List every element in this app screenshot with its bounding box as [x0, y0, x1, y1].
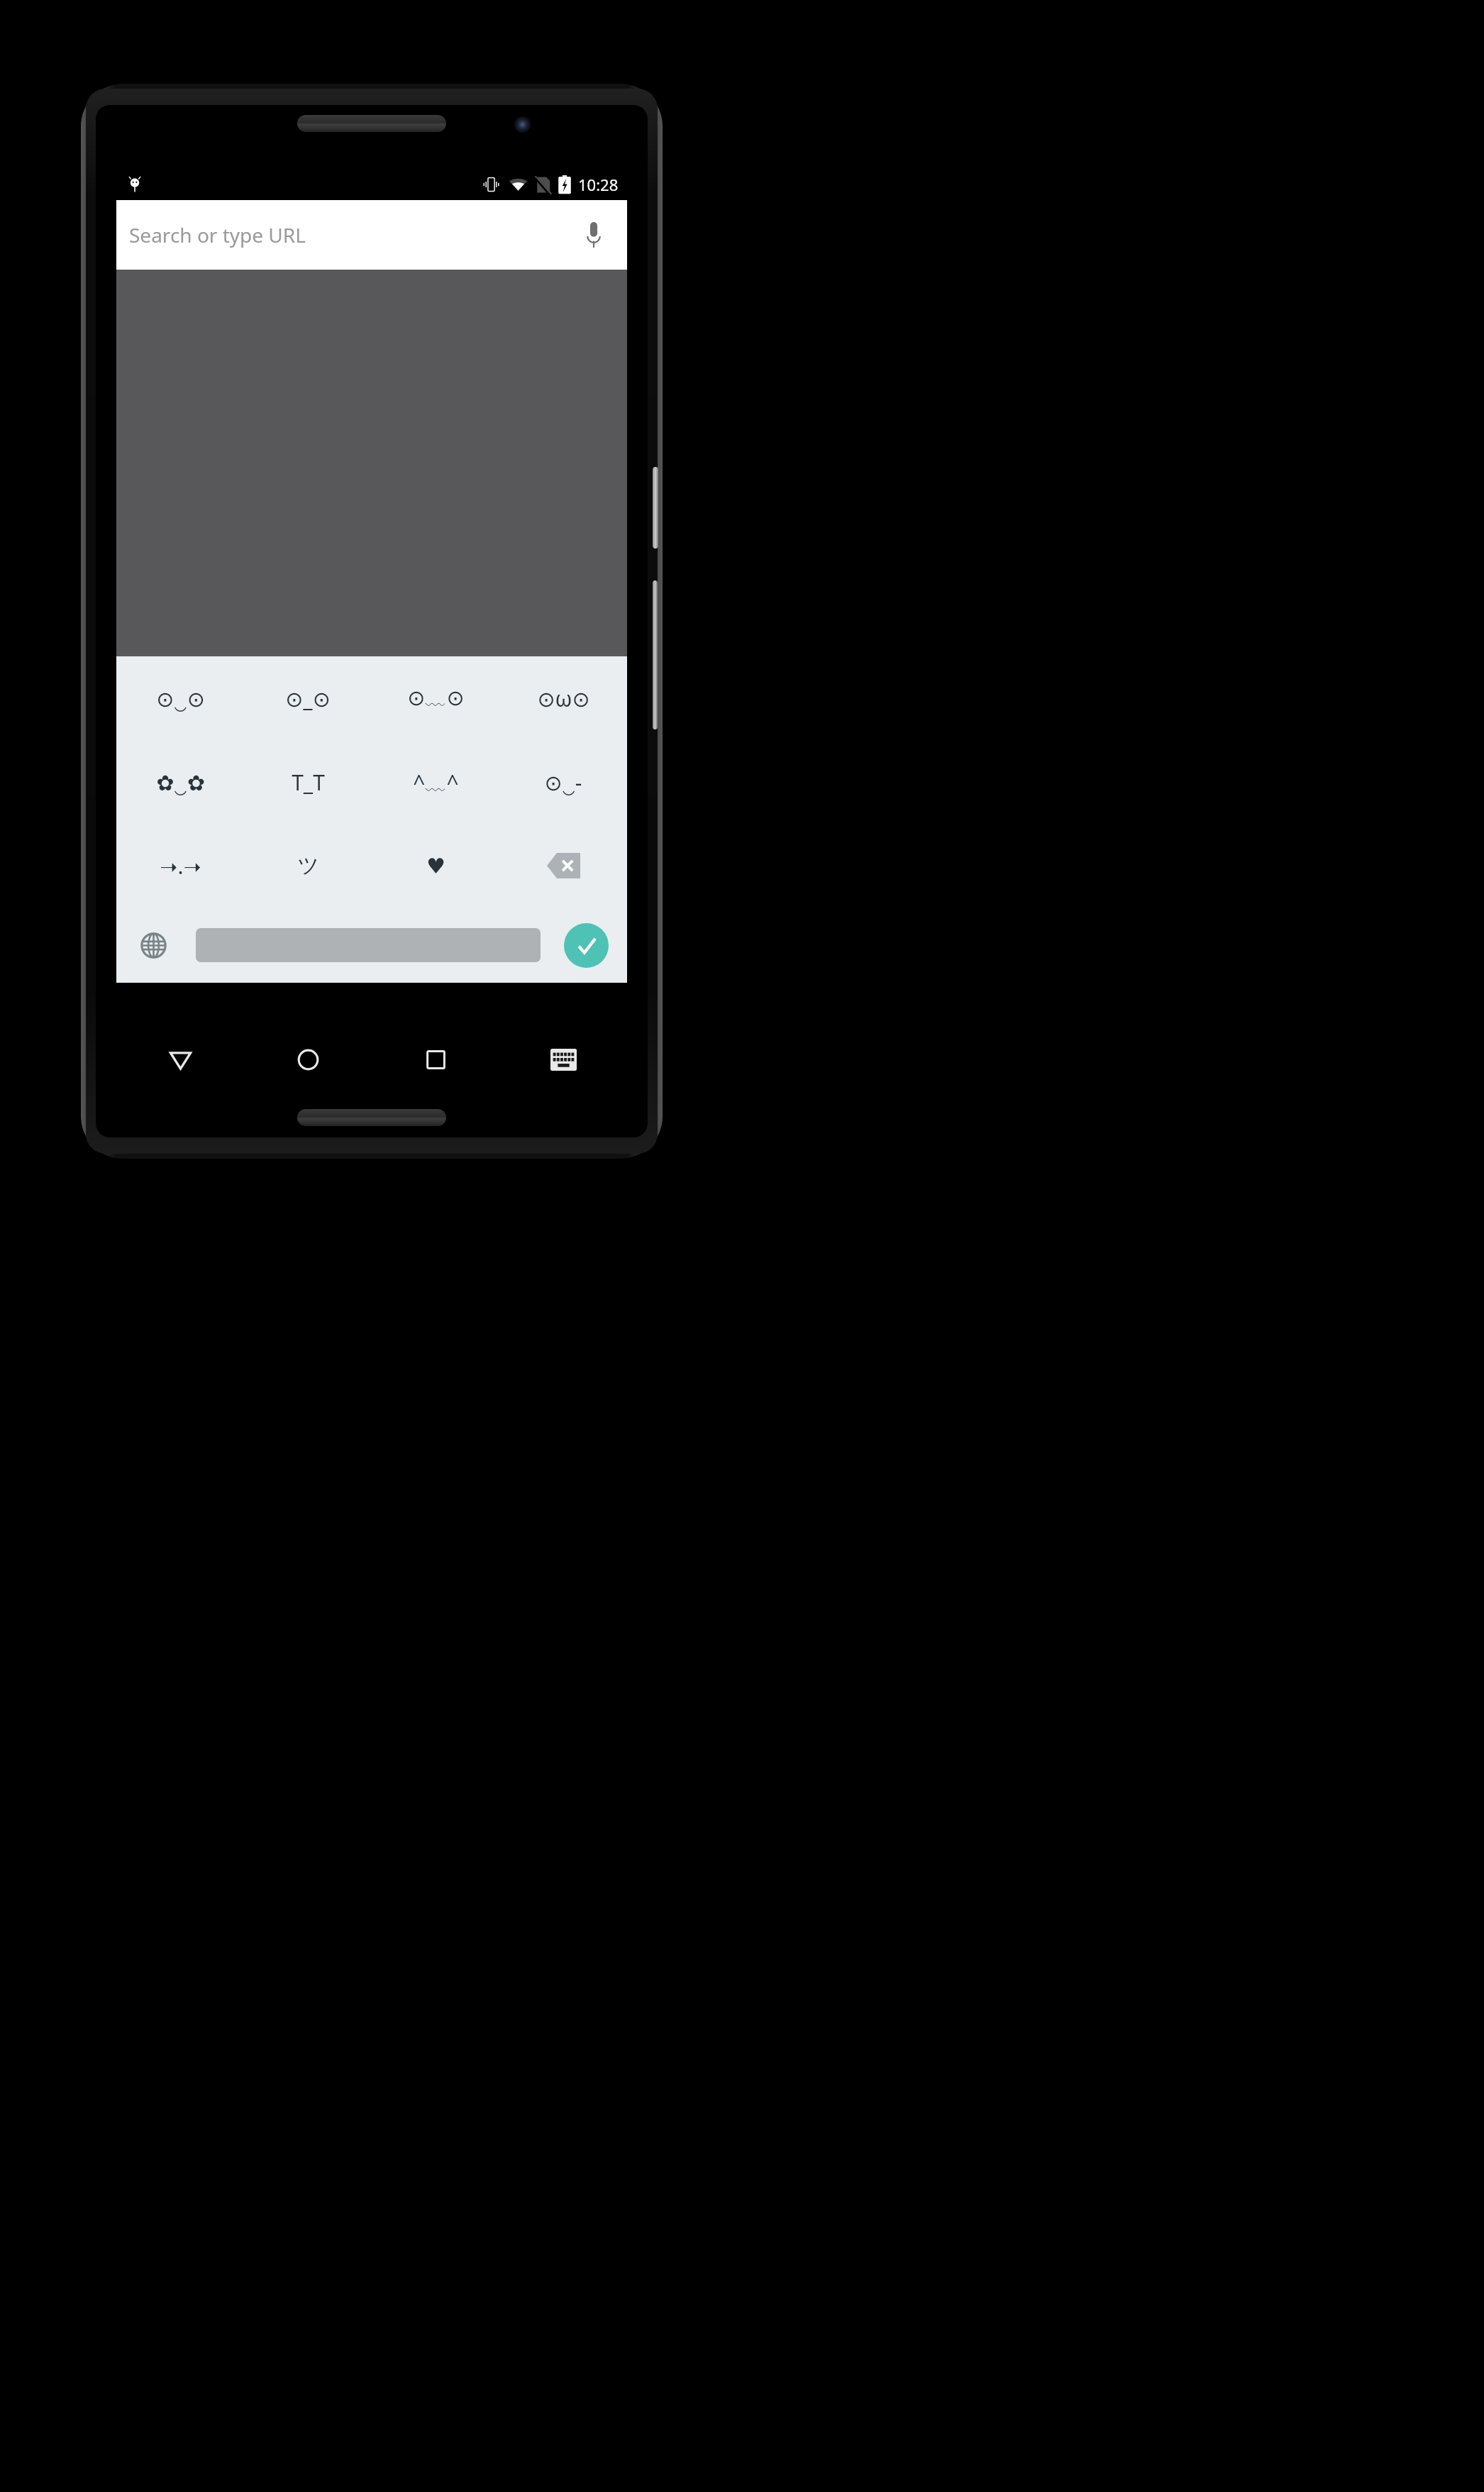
button[interactable]: Done	[564, 923, 609, 968]
button[interactable]: Choose input method	[499, 1020, 627, 1098]
button[interactable]: ⊙_⊙	[244, 656, 372, 740]
button[interactable]: Switch input language	[116, 908, 191, 983]
staticText: ⊙﹏⊙	[407, 685, 465, 712]
button[interactable]: ^﹏^	[372, 740, 499, 824]
staticText: ⊙ω⊙	[537, 684, 590, 713]
button[interactable]: ✿‿✿	[116, 740, 244, 824]
staticText: ➝.➝	[160, 851, 201, 881]
staticText: 10:28	[578, 174, 619, 195]
button[interactable]: Voice search	[574, 216, 613, 255]
button[interactable]: ⊙ω⊙	[499, 656, 627, 740]
staticText: ⊙‿-	[544, 768, 582, 797]
button[interactable]: Hide keyboard	[116, 1020, 244, 1098]
staticText: ⊙_⊙	[285, 684, 331, 713]
button[interactable]: ♥	[372, 824, 499, 908]
staticText: Search or type URL	[129, 221, 306, 248]
button[interactable]: Space	[196, 928, 541, 962]
button[interactable]: Home	[244, 1020, 372, 1098]
button[interactable]: T_T	[244, 740, 372, 824]
button[interactable]: ⊙﹏⊙	[372, 656, 499, 740]
button[interactable]: Search or type URL	[116, 200, 627, 270]
staticText: ⊙‿⊙	[156, 684, 205, 713]
button[interactable]: Backspace	[499, 824, 627, 908]
button[interactable]: ⊙‿-	[499, 740, 627, 824]
button[interactable]: ツ	[244, 824, 372, 908]
button[interactable]: ⊙‿⊙	[116, 656, 244, 740]
staticText: ^﹏^	[413, 768, 459, 797]
staticText: T_T	[292, 768, 325, 797]
button[interactable]: Recents	[372, 1020, 499, 1098]
staticText: ✿‿✿	[156, 768, 205, 797]
button[interactable]: ➝.➝	[116, 824, 244, 908]
staticText: ツ	[297, 852, 319, 879]
staticText: ♥	[426, 854, 445, 878]
